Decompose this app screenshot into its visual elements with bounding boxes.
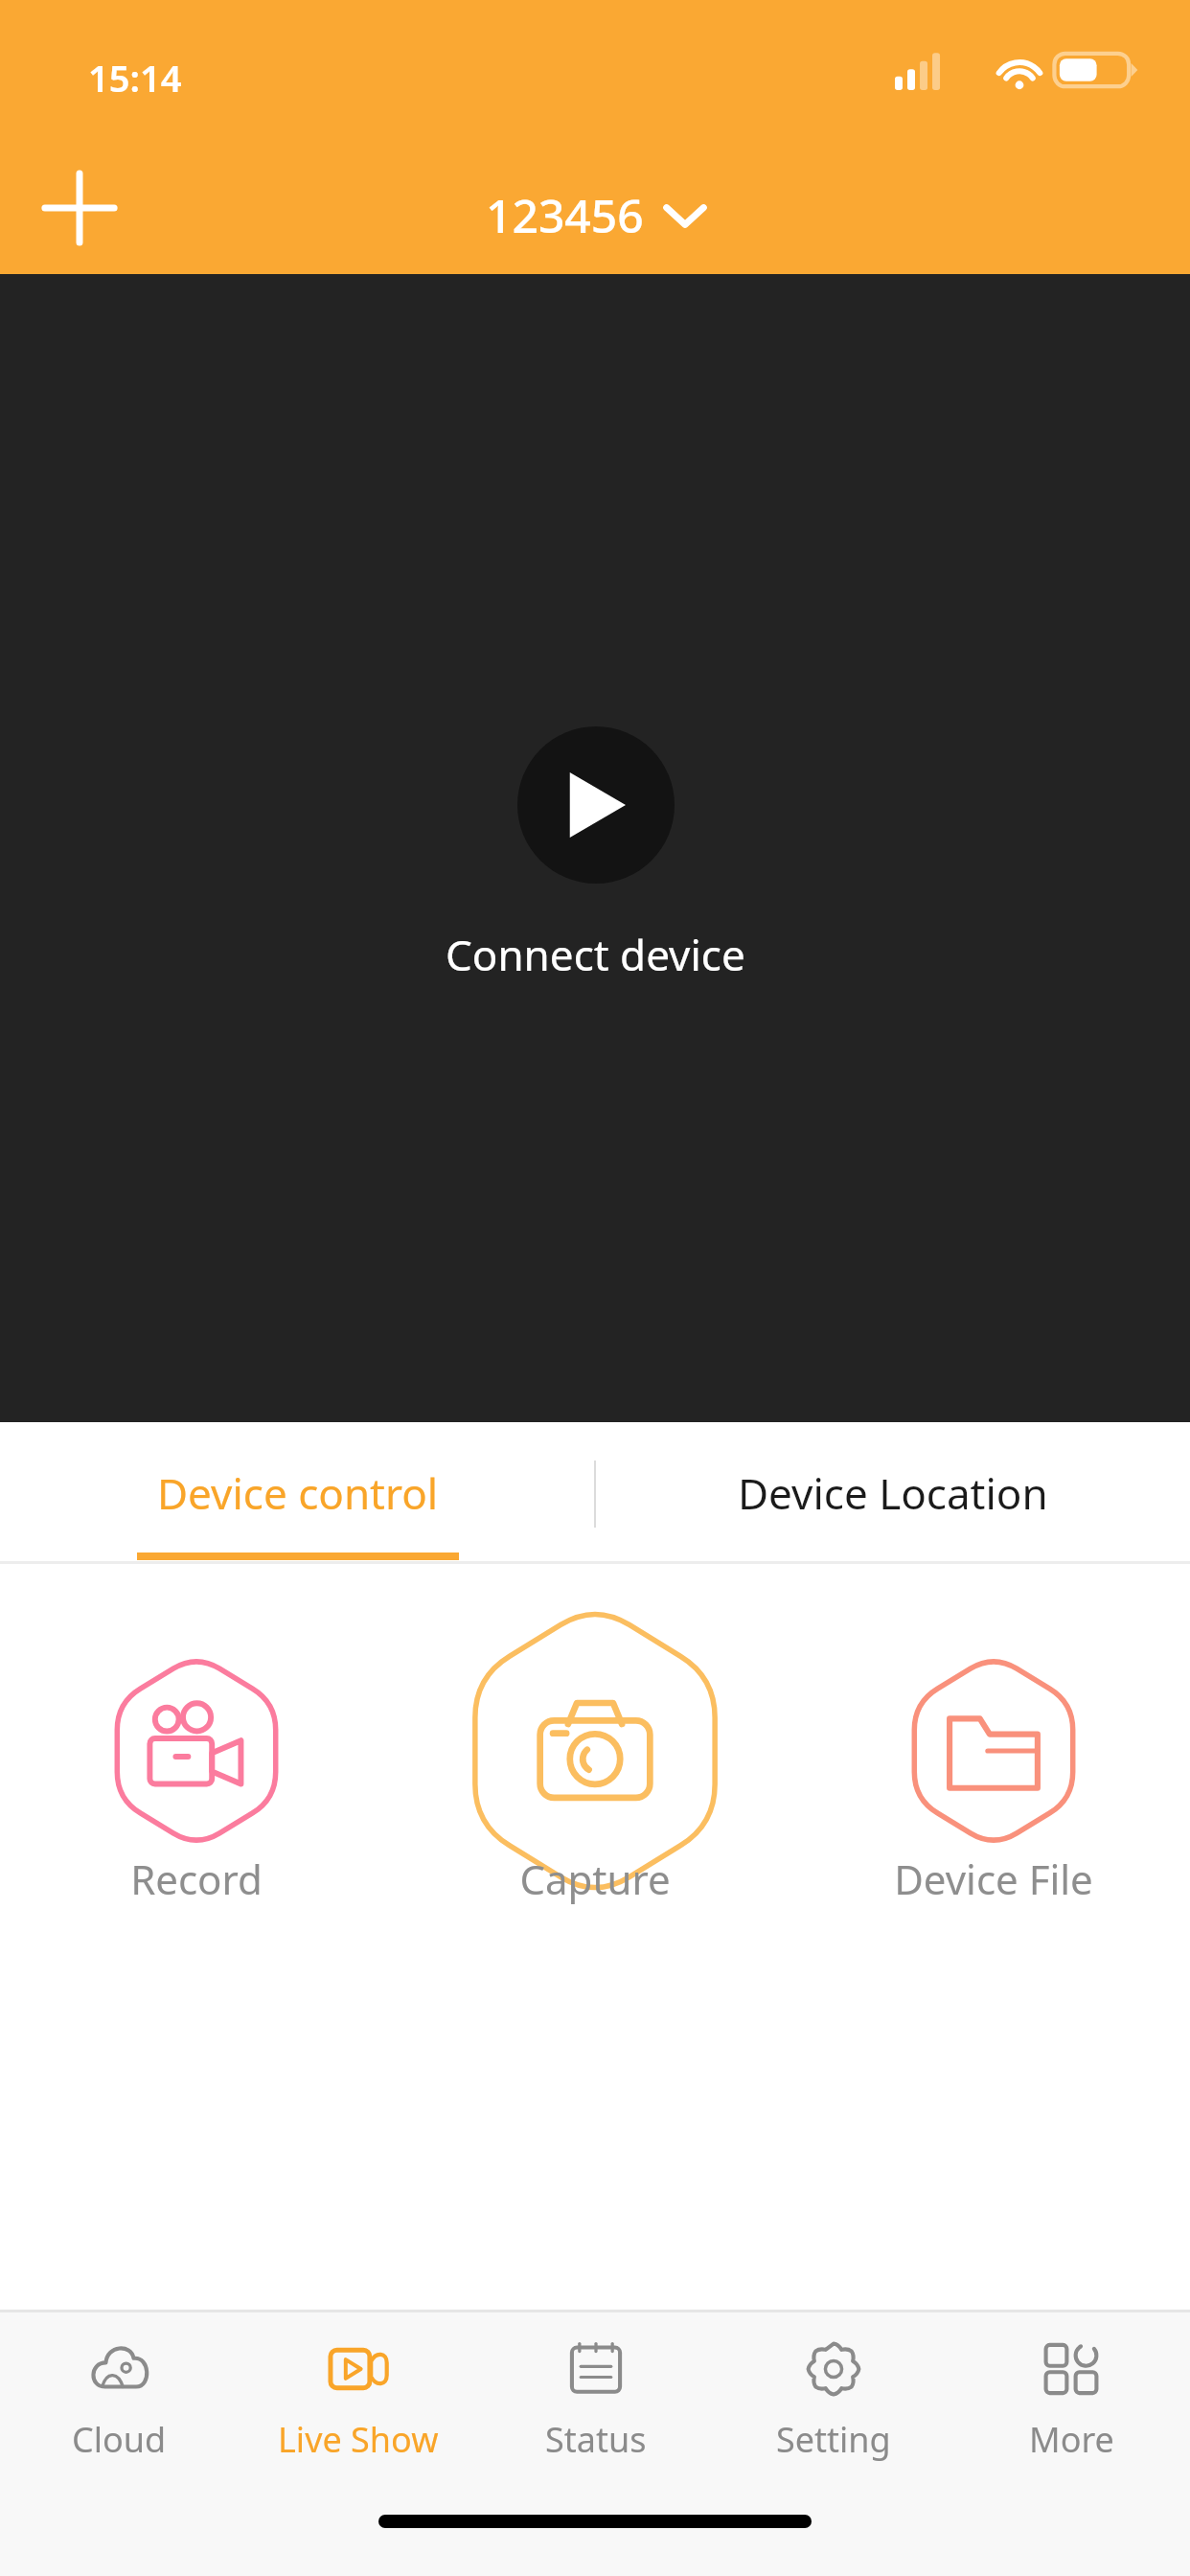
button[interactable]: Play, connect device — [517, 726, 675, 884]
staticText: 123456 — [486, 184, 644, 246]
button[interactable]: Setting — [715, 2312, 952, 2490]
staticText: More — [1029, 2416, 1114, 2463]
button[interactable]: Device File — [850, 1578, 1137, 1962]
staticText: Live Show — [278, 2416, 439, 2463]
button[interactable]: Device control — [0, 1422, 595, 1564]
staticText: Cloud — [72, 2416, 167, 2463]
staticText: Device control — [157, 1464, 439, 1522]
staticText: Setting — [776, 2416, 891, 2463]
button[interactable]: 123456 — [476, 178, 715, 252]
button[interactable]: Live Show — [239, 2312, 477, 2490]
button[interactable]: Record — [53, 1578, 340, 1962]
button[interactable]: Status — [477, 2312, 715, 2490]
button[interactable]: Cloud — [0, 2312, 239, 2490]
staticText: Device Location — [738, 1464, 1048, 1522]
staticText: Status — [545, 2416, 647, 2463]
button[interactable]: More — [952, 2312, 1190, 2490]
button[interactable]: Device Location — [595, 1422, 1190, 1564]
button[interactable]: Add device — [38, 167, 121, 249]
staticText: Device File — [894, 1851, 1093, 1906]
staticText: Record — [130, 1851, 263, 1906]
button[interactable]: Capture — [451, 1578, 739, 1962]
staticText: Capture — [519, 1851, 671, 1906]
staticText: 15:14 — [88, 53, 182, 103]
staticText: Connect device — [446, 926, 745, 983]
